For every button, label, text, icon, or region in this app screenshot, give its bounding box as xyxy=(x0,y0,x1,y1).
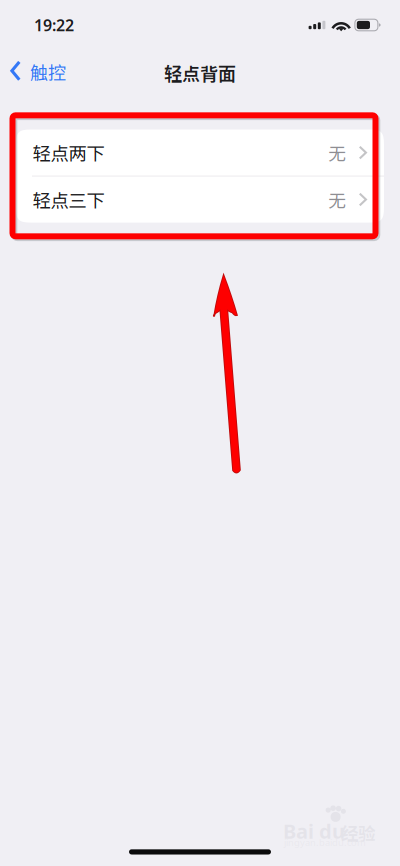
staticText: 轻点背面 xyxy=(164,60,236,86)
staticText: 经验 xyxy=(341,820,375,845)
staticText: 无 xyxy=(328,140,346,165)
button[interactable]: 触控 xyxy=(0,53,74,93)
staticText: jingyan.baidu.com xyxy=(284,836,366,849)
button[interactable]: 轻点两下 xyxy=(16,129,384,176)
staticText: 19:22 xyxy=(34,14,74,36)
staticText: 触控 xyxy=(30,59,66,85)
staticText: 无 xyxy=(328,187,346,212)
staticText: 轻点两下 xyxy=(32,139,104,166)
staticText: Bai du xyxy=(283,818,345,844)
button[interactable]: 轻点三下 xyxy=(16,176,384,223)
staticText: 轻点三下 xyxy=(32,186,104,213)
